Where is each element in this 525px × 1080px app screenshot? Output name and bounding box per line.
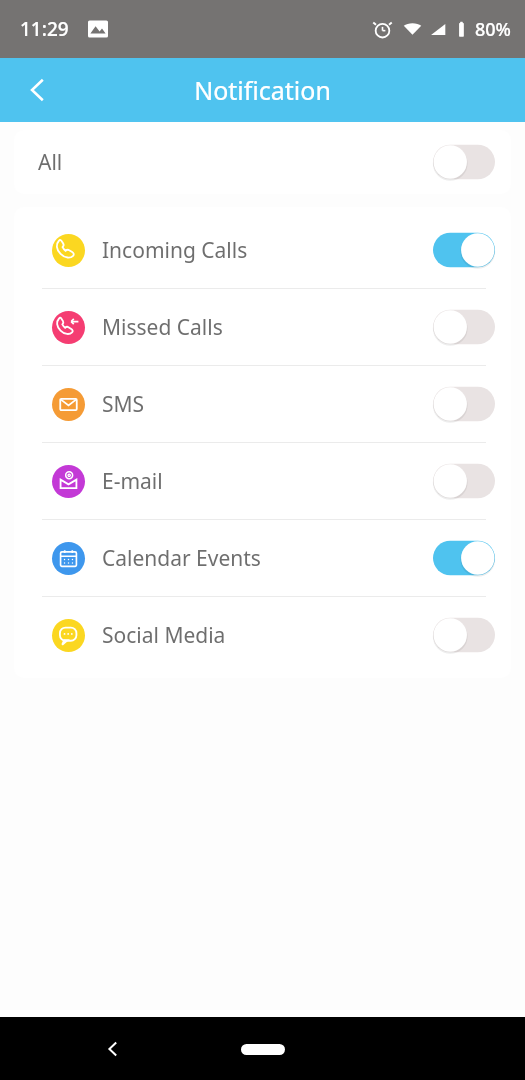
staticText: Social Media bbox=[102, 621, 226, 650]
button[interactable]: Back bbox=[0, 58, 76, 122]
button[interactable]: Off bbox=[433, 141, 495, 183]
staticText: E-mail bbox=[102, 467, 163, 496]
staticText: 80% bbox=[475, 17, 511, 42]
button[interactable]: Off bbox=[433, 383, 495, 425]
button[interactable]: Off bbox=[433, 460, 495, 502]
button[interactable]: Home bbox=[231, 1037, 295, 1061]
staticText: SMS bbox=[102, 390, 145, 419]
button[interactable]: E-mail bbox=[14, 443, 511, 519]
button[interactable]: Social Media bbox=[14, 597, 511, 673]
button[interactable]: On bbox=[433, 229, 495, 271]
button[interactable]: SMS bbox=[14, 366, 511, 442]
staticText: Missed Calls bbox=[102, 313, 223, 342]
button[interactable]: Back bbox=[84, 1020, 142, 1078]
staticText: Incoming Calls bbox=[102, 236, 248, 265]
button[interactable]: Off bbox=[433, 614, 495, 656]
staticText: Calendar Events bbox=[102, 544, 261, 573]
staticText: 11:29 bbox=[20, 16, 69, 42]
button[interactable]: On bbox=[433, 537, 495, 579]
button[interactable]: All bbox=[14, 130, 511, 194]
staticText: Notification bbox=[194, 73, 331, 107]
button[interactable]: Incoming Calls bbox=[14, 212, 511, 288]
button[interactable]: Missed Calls bbox=[14, 289, 511, 365]
button[interactable]: Calendar Events bbox=[14, 520, 511, 596]
staticText: All bbox=[38, 148, 63, 177]
button[interactable]: Off bbox=[433, 306, 495, 348]
